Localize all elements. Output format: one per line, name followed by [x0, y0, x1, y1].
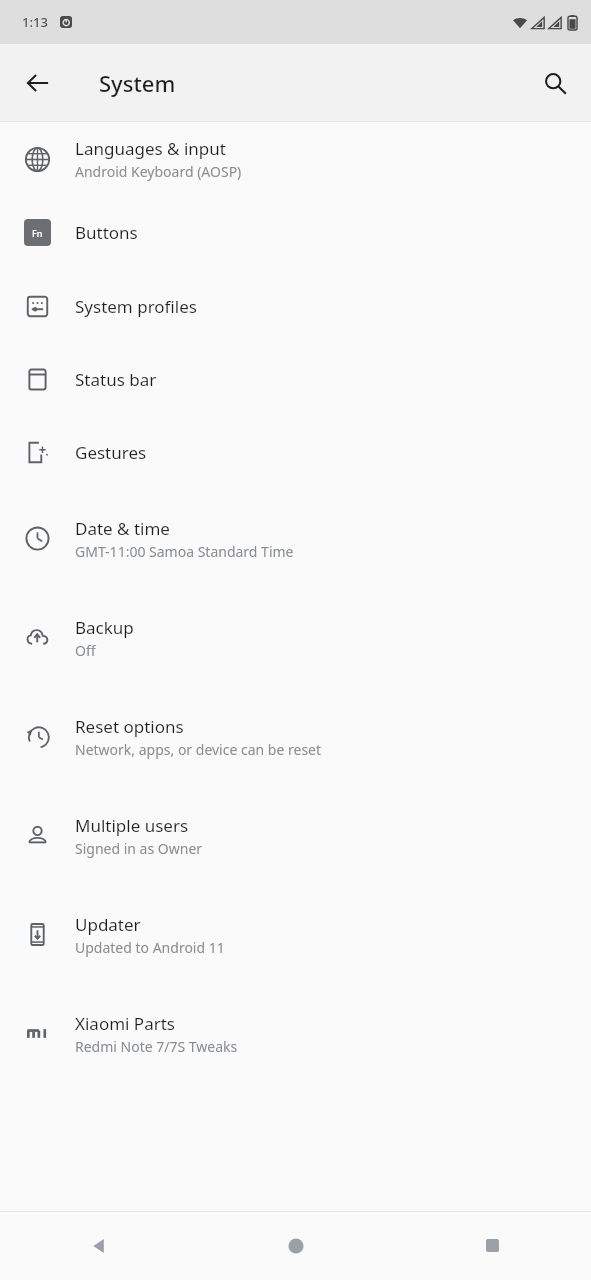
staticText: Off: [75, 641, 96, 660]
button[interactable]: Reset options: [0, 687, 591, 786]
staticText: Reset options: [75, 715, 184, 738]
staticText: System profiles: [75, 295, 197, 318]
staticText: Updater: [75, 913, 141, 936]
button[interactable]: Gestures: [0, 416, 591, 489]
staticText: Buttons: [75, 221, 138, 244]
button[interactable]: Back: [0, 1211, 197, 1280]
staticText: Xiaomi Parts: [75, 1012, 175, 1035]
button[interactable]: Fn: [0, 196, 591, 269]
button[interactable]: Search: [531, 59, 579, 107]
button[interactable]: Updater: [0, 885, 591, 984]
button[interactable]: Multiple users: [0, 786, 591, 885]
staticText: Network, apps, or device can be reset: [75, 740, 322, 759]
button[interactable]: Backup: [0, 588, 591, 687]
button[interactable]: Home: [197, 1211, 394, 1280]
button[interactable]: Languages & input: [0, 122, 591, 196]
button[interactable]: Status bar: [0, 343, 591, 416]
staticText: Backup: [75, 616, 134, 639]
staticText: System: [99, 68, 176, 98]
staticText: Status bar: [75, 368, 157, 391]
button[interactable]: System profiles: [0, 269, 591, 343]
staticText: Updated to Android 11: [75, 938, 225, 957]
staticText: Languages & input: [75, 137, 226, 160]
staticText: Signed in as Owner: [75, 839, 203, 858]
button[interactable]: Recent apps: [394, 1211, 591, 1280]
staticText: Fn: [32, 227, 43, 239]
button[interactable]: Xiaomi Parts: [0, 984, 591, 1083]
button[interactable]: Date & time: [0, 489, 591, 588]
staticText: Gestures: [75, 441, 147, 464]
button[interactable]: Navigate up: [14, 59, 62, 107]
staticText: Android Keyboard (AOSP): [75, 162, 242, 181]
staticText: 1:13: [22, 13, 48, 31]
staticText: Multiple users: [75, 814, 189, 837]
staticText: Date & time: [75, 517, 170, 540]
staticText: Redmi Note 7/7S Tweaks: [75, 1037, 238, 1056]
staticText: GMT-11:00 Samoa Standard Time: [75, 542, 294, 561]
